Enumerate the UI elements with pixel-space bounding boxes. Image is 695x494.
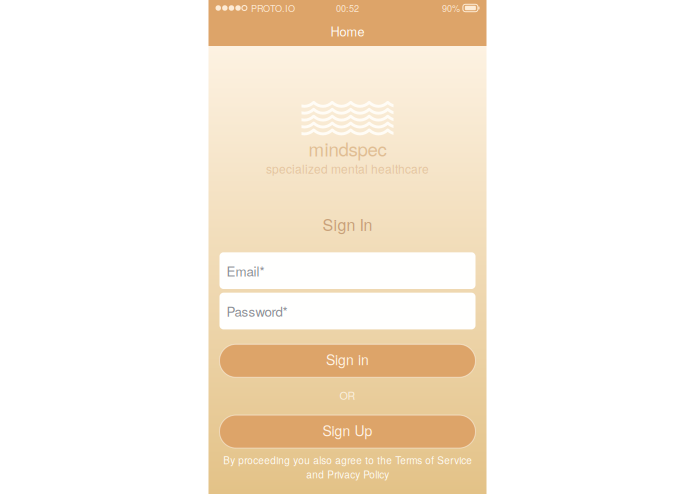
button[interactable]: Sign in	[219, 344, 475, 377]
staticText: Password*	[226, 301, 287, 321]
staticText: Sign in	[326, 349, 369, 369]
button[interactable]: Sign Up	[219, 415, 475, 448]
staticText: PROTO.IO	[251, 1, 295, 14]
staticText: Email*	[226, 261, 264, 280]
staticText: 90%	[442, 1, 460, 14]
staticText: Home	[330, 22, 364, 40]
staticText: Sign In	[322, 212, 372, 235]
button[interactable]: Password*	[219, 293, 475, 329]
staticText: 00:52	[336, 1, 359, 14]
staticText: Sign Up	[322, 420, 372, 440]
staticText: specialized mental healthcare	[266, 160, 429, 177]
staticText: OR	[339, 387, 355, 403]
button[interactable]: Email*	[219, 252, 475, 289]
staticText: By proceeding you also agree to the Term…	[223, 453, 472, 481]
staticText: mindspec	[308, 135, 386, 162]
